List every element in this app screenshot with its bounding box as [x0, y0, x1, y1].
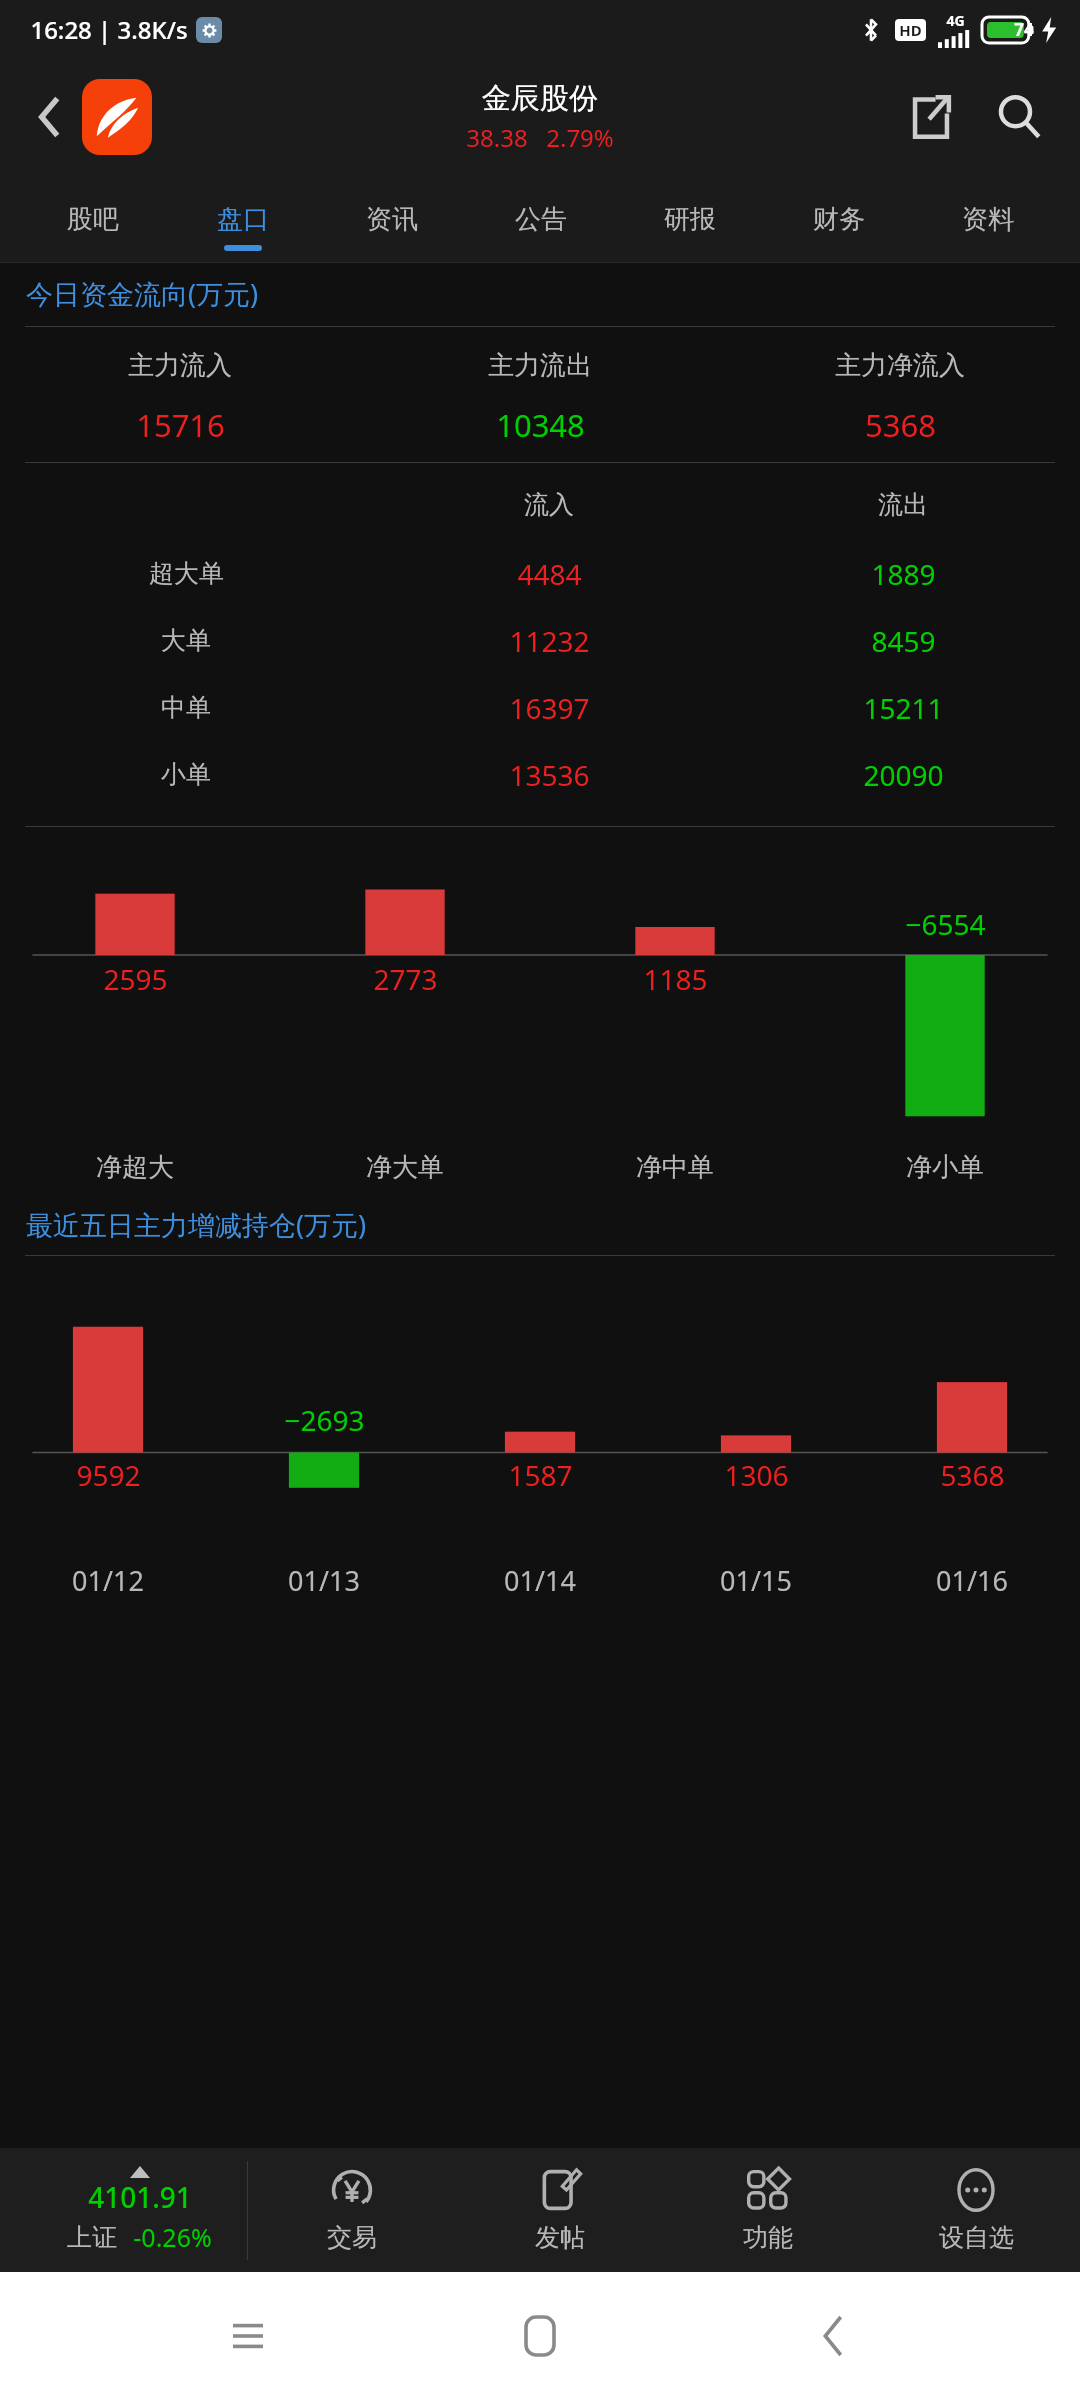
staticText: 中单: [161, 692, 211, 723]
button[interactable]: 股吧: [18, 175, 168, 263]
staticText: 2595: [103, 960, 168, 998]
staticText: 金辰股份: [482, 80, 598, 117]
staticText: 2.79%: [546, 121, 614, 154]
staticText: 主力流入: [128, 349, 232, 382]
staticText: 1889: [871, 555, 936, 593]
staticText: 1185: [643, 960, 708, 998]
button[interactable]: 设自选: [872, 2148, 1080, 2272]
staticText: 公告: [515, 203, 567, 236]
staticText: 4484: [517, 555, 582, 593]
staticText: 上证: [67, 2222, 117, 2253]
button[interactable]: Home: [495, 2291, 585, 2381]
staticText: 主力流出: [488, 349, 592, 382]
button[interactable]: Back: [22, 89, 78, 145]
button[interactable]: 交易: [248, 2148, 456, 2272]
staticText: 16397: [509, 689, 590, 727]
staticText: 净大单: [366, 1151, 444, 1184]
staticText: HD: [899, 20, 922, 40]
staticText: −2693: [284, 1401, 365, 1439]
button[interactable]: 盘口: [168, 175, 317, 263]
staticText: 盘口: [217, 203, 269, 236]
staticText: 流入: [524, 489, 574, 520]
button[interactable]: Back: [788, 2291, 878, 2381]
staticText: 净中单: [636, 1151, 714, 1184]
staticText: 流出: [878, 489, 928, 520]
staticText: 资讯: [366, 203, 418, 236]
button[interactable]: 公告: [466, 175, 615, 263]
staticText: 01/15: [720, 1562, 792, 1599]
button[interactable]: Share: [896, 82, 966, 152]
staticText: 功能: [743, 2222, 793, 2253]
staticText: 9592: [76, 1456, 141, 1494]
button[interactable]: 资讯: [317, 175, 466, 263]
staticText: 11232: [509, 622, 590, 660]
staticText: 01/13: [288, 1562, 360, 1599]
staticText: 设自选: [939, 2222, 1014, 2253]
staticText: 38.38: [466, 121, 528, 154]
staticText: 01/14: [504, 1562, 576, 1599]
staticText: 净小单: [906, 1151, 984, 1184]
button[interactable]: 4101.91: [0, 2148, 248, 2272]
staticText: 净超大: [96, 1151, 174, 1184]
staticText: 研报: [664, 203, 716, 236]
staticText: 13536: [509, 756, 590, 794]
button[interactable]: Recents: [203, 2291, 293, 2381]
staticText: 16:28 | 3.8K/s: [30, 13, 188, 46]
staticText: 2773: [373, 960, 438, 998]
staticText: 4101.91: [88, 2178, 192, 2216]
staticText: 财务: [813, 203, 865, 236]
button[interactable]: App logo: [82, 79, 152, 155]
staticText: 1587: [508, 1456, 573, 1494]
button[interactable]: 资料: [913, 175, 1062, 263]
staticText: 74: [1014, 18, 1034, 41]
staticText: 主力净流入: [835, 349, 965, 382]
staticText: 股吧: [67, 203, 119, 236]
staticText: 8459: [871, 622, 936, 660]
button[interactable]: 功能: [664, 2148, 872, 2272]
button[interactable]: Search: [984, 82, 1054, 152]
staticText: 01/16: [936, 1562, 1008, 1599]
staticText: 1306: [724, 1456, 789, 1494]
staticText: 10348: [496, 404, 585, 446]
button[interactable]: 财务: [764, 175, 913, 263]
staticText: −6554: [905, 905, 986, 943]
staticText: 交易: [327, 2222, 377, 2253]
staticText: 5368: [865, 404, 936, 446]
staticText: 15716: [136, 404, 225, 446]
staticText: 大单: [161, 625, 211, 656]
staticText: 20090: [863, 756, 944, 794]
staticText: 最近五日主力增减持仓(万元): [26, 1206, 367, 1243]
staticText: 4G: [946, 11, 965, 30]
staticText: 小单: [161, 759, 211, 790]
staticText: 发帖: [535, 2222, 585, 2253]
staticText: 01/12: [72, 1562, 144, 1599]
staticText: 超大单: [149, 558, 224, 589]
button[interactable]: 研报: [615, 175, 764, 263]
staticText: 今日资金流向(万元): [26, 275, 259, 312]
staticText: 5368: [940, 1456, 1005, 1494]
button[interactable]: 发帖: [456, 2148, 664, 2272]
staticText: 15211: [863, 689, 944, 727]
staticText: -0.26%: [133, 2220, 212, 2254]
staticText: 资料: [962, 203, 1014, 236]
